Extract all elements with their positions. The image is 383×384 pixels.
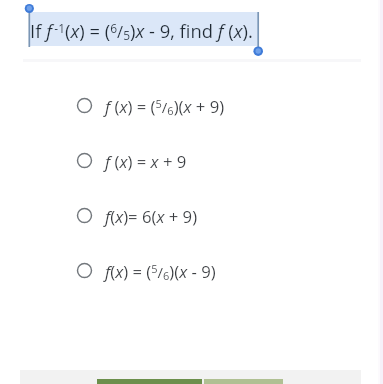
button[interactable]: Selection start handle (22, 0, 38, 50)
button[interactable]: f(x) = 6(x + 9) (0, 194, 383, 249)
staticText: If f -1(x) = (6/5)x - 9, find f (x). (30, 18, 253, 44)
staticText: f (x) = x + 9 (105, 150, 187, 173)
button[interactable]: Selection end handle (251, 10, 267, 60)
button[interactable]: f(x) = (5/6)(x - 9) (0, 249, 383, 304)
staticText: f(x)= 6(x + 9) (105, 205, 198, 228)
button[interactable]: f(x) = x + 9 (0, 139, 383, 194)
staticText: f (x) = (5/6)(x + 9) (105, 95, 225, 119)
button[interactable]: f(x) = (5/6)(x + 9) (0, 84, 383, 139)
staticText: f(x) = (5/6)(x - 9) (105, 260, 216, 284)
